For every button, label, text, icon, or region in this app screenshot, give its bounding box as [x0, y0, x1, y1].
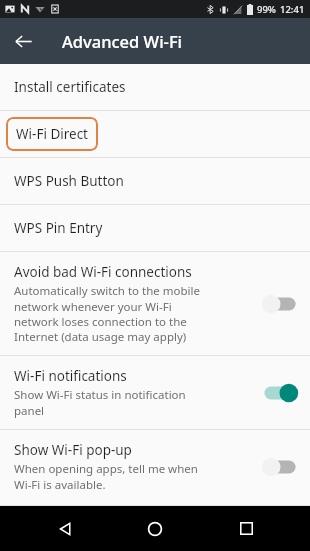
button[interactable]: Wi-Fi notifications [0, 356, 310, 429]
staticText: Advanced Wi-Fi [62, 30, 183, 52]
button[interactable]: Navigate up [0, 18, 46, 64]
button[interactable]: Recent apps [220, 506, 272, 551]
staticText: Automatically switch to the mobile netwo… [14, 283, 217, 344]
button[interactable]: Off [260, 454, 300, 480]
staticText: WPS Push Button [14, 172, 124, 190]
button[interactable]: Avoid bad Wi-Fi connections [0, 252, 310, 355]
staticText: WPS Pin Entry [14, 219, 103, 237]
staticText: 12:41 [280, 3, 305, 16]
button[interactable]: Install certificates [0, 64, 310, 110]
button[interactable]: Wi-Fi Direct [0, 111, 310, 157]
staticText: When opening apps, tell me when Wi-Fi is… [14, 461, 217, 492]
button[interactable]: Back [39, 506, 91, 551]
staticText: Install certificates [14, 78, 126, 96]
button[interactable]: WPS Push Button [0, 158, 310, 204]
staticText: 99% [257, 3, 276, 16]
button[interactable]: Off [260, 291, 300, 317]
staticText: Show Wi-Fi status in notification panel [14, 387, 217, 418]
staticText: Wi-Fi Direct [16, 125, 88, 143]
button[interactable]: On [260, 380, 300, 406]
button[interactable]: Show Wi-Fi pop-up [0, 430, 310, 503]
staticText: Avoid bad Wi-Fi connections [14, 263, 192, 281]
button[interactable]: WPS Pin Entry [0, 205, 310, 251]
staticText: Wi-Fi notifications [14, 367, 127, 385]
button[interactable]: Home [129, 506, 181, 551]
staticText: Show Wi-Fi pop-up [14, 441, 132, 459]
